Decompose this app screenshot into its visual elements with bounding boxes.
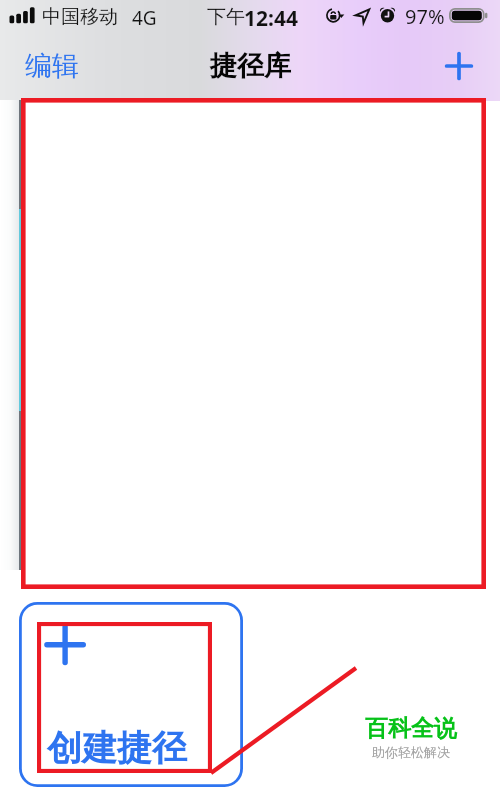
button[interactable]: 创建捷径 bbox=[19, 602, 243, 787]
staticText: 编辑 bbox=[25, 49, 79, 83]
staticText: 助你轻松解决 bbox=[372, 744, 450, 760]
staticText: 下午 bbox=[207, 5, 245, 29]
staticText: 12:44 bbox=[244, 4, 298, 33]
staticText: 中国移动 bbox=[42, 5, 118, 29]
staticText: 百科全说 bbox=[365, 714, 457, 743]
staticText: 4G bbox=[132, 5, 157, 31]
button[interactable]: 编辑 bbox=[17, 41, 87, 91]
staticText: 捷径库 bbox=[210, 49, 291, 83]
button[interactable]: Add shortcut bbox=[439, 46, 479, 86]
staticText: 创建捷径 bbox=[47, 726, 187, 770]
staticText: 97% bbox=[405, 3, 445, 30]
